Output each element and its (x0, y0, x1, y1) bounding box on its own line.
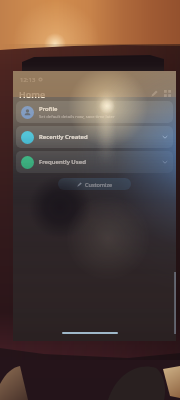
button[interactable]: Edit (149, 88, 160, 99)
button[interactable]: Frequently Used (16, 151, 173, 173)
button[interactable]: Apps (162, 88, 173, 99)
staticText: 12:13 (20, 76, 36, 84)
button[interactable]: Recently Created (16, 126, 173, 148)
button[interactable]: Customize (58, 178, 131, 190)
staticText: Customize (85, 181, 113, 188)
staticText: Recently Created (39, 133, 88, 141)
staticText: Home (19, 88, 46, 100)
staticText: Profile (39, 105, 58, 113)
button[interactable]: Profile (16, 101, 173, 123)
staticText: Set default details now, save time later (39, 114, 115, 120)
staticText: Frequently Used (39, 158, 86, 166)
